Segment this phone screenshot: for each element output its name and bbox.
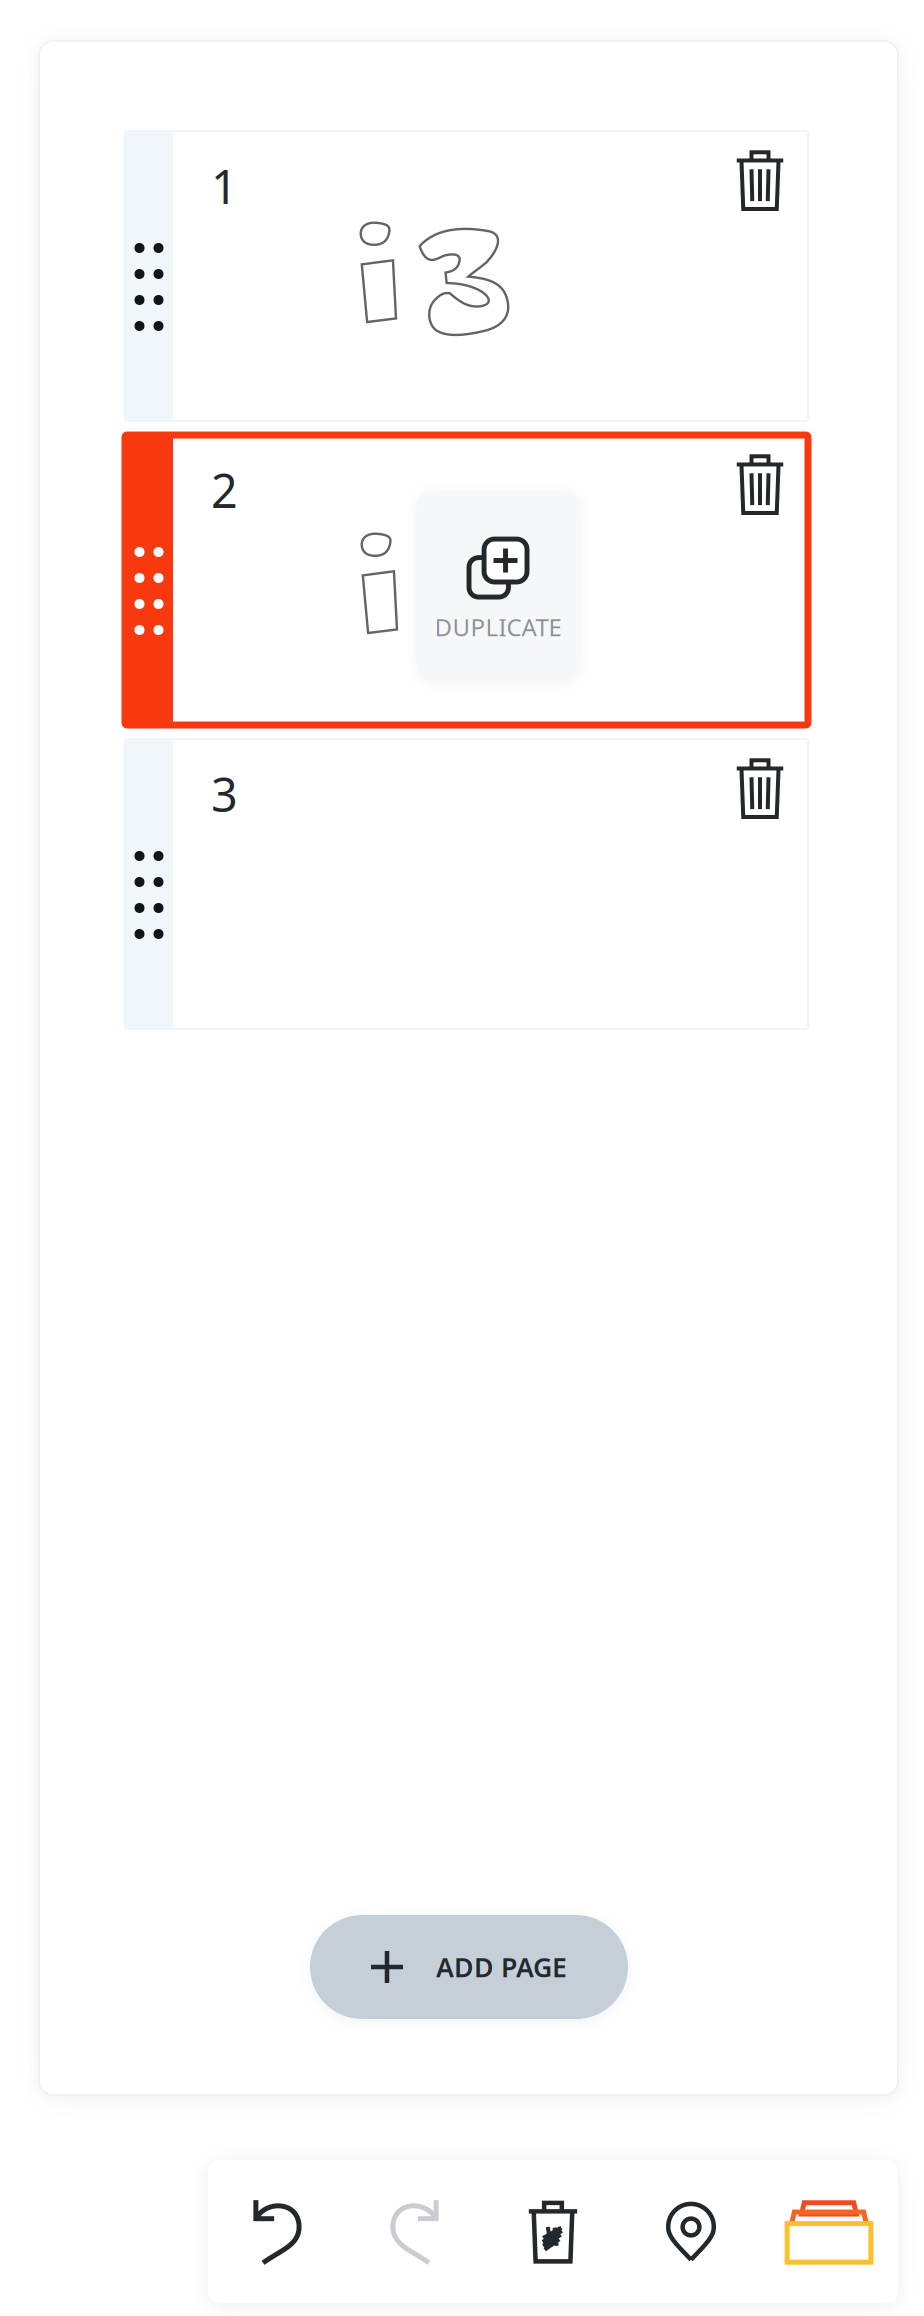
staticText: DUPLICATE	[434, 611, 561, 643]
button[interactable]: Clear page	[484, 2160, 622, 2303]
button[interactable]: Add location	[622, 2160, 760, 2303]
button[interactable]: Delete page 2	[715, 439, 805, 529]
staticText: 3	[211, 763, 238, 825]
button[interactable]: Delete page 1	[715, 135, 805, 225]
button[interactable]: ADD PAGE	[310, 1915, 628, 2019]
button[interactable]: DUPLICATE	[418, 492, 578, 678]
staticText: ADD PAGE	[436, 1949, 567, 1985]
staticText: 2	[211, 459, 238, 521]
button[interactable]: Undo	[208, 2160, 346, 2303]
button[interactable]: Delete page 3	[715, 743, 805, 833]
staticText: 1	[211, 155, 238, 217]
button[interactable]: Redo	[346, 2160, 484, 2303]
button[interactable]: Pages	[760, 2160, 898, 2303]
